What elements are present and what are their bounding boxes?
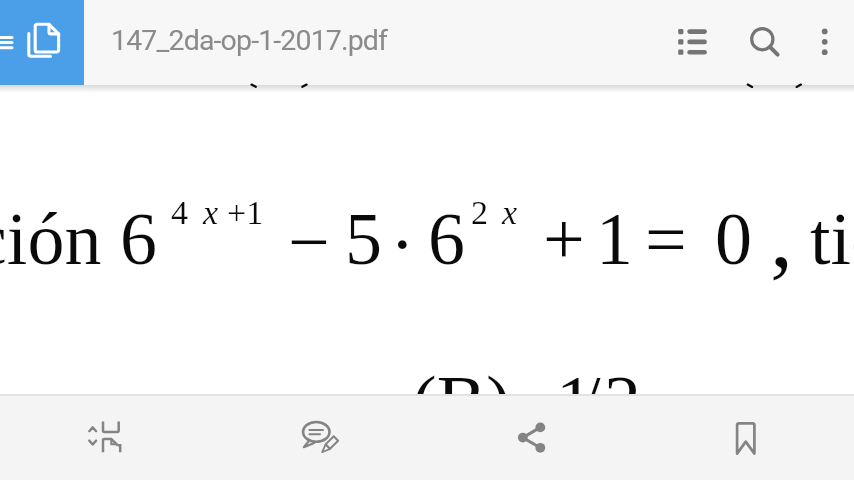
staticText: 4 bbox=[171, 194, 188, 232]
staticText: − bbox=[288, 201, 330, 283]
staticText: + bbox=[543, 198, 585, 280]
staticText: 5 bbox=[345, 198, 382, 280]
staticText: ción bbox=[0, 198, 102, 280]
staticText: 1 bbox=[556, 361, 593, 443]
staticText: 147_2da-op-1-2017.pdf bbox=[111, 24, 388, 57]
staticText: 2 bbox=[604, 361, 641, 443]
staticText: 1 bbox=[596, 198, 633, 280]
staticText: +1 bbox=[227, 194, 264, 232]
staticText: = bbox=[645, 198, 687, 280]
staticText: 0 bbox=[715, 198, 752, 280]
staticText: x bbox=[502, 194, 518, 232]
staticText: · bbox=[390, 203, 415, 285]
staticText: , bbox=[770, 184, 793, 286]
staticText: tie bbox=[810, 198, 854, 280]
staticText: 6 bbox=[428, 198, 465, 280]
staticText: (B) bbox=[412, 361, 511, 443]
staticText: 6 bbox=[120, 198, 157, 280]
staticText: / bbox=[580, 361, 601, 443]
staticText: 2 bbox=[471, 194, 488, 232]
staticText: x bbox=[203, 194, 219, 232]
